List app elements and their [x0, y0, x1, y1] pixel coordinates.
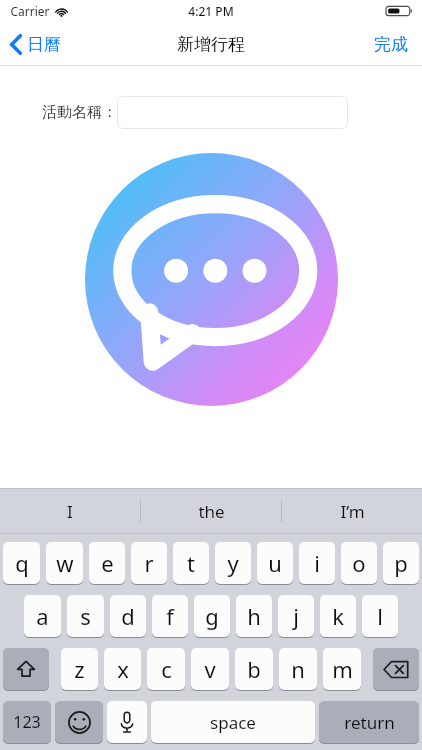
button[interactable]: the [141, 488, 281, 534]
button[interactable]: 123 [3, 701, 51, 743]
button[interactable]: i [299, 542, 335, 584]
button[interactable]: d [110, 595, 146, 637]
staticText: n [291, 654, 305, 684]
staticText: w [56, 548, 74, 578]
button[interactable]: j [278, 595, 314, 637]
button[interactable] [117, 96, 348, 129]
staticText: g [205, 601, 219, 631]
button[interactable]: w [46, 542, 83, 584]
button[interactable]: v [191, 648, 229, 690]
staticText: space [210, 711, 256, 734]
button[interactable]: t [173, 542, 209, 584]
button[interactable]: q [3, 542, 40, 584]
staticText: b [247, 654, 261, 684]
staticText: p [394, 548, 408, 578]
button[interactable]: z [61, 648, 98, 690]
button[interactable]: Shift [3, 648, 49, 690]
button[interactable]: p [383, 542, 419, 584]
button[interactable]: 完成 [360, 26, 422, 63]
staticText: I’m [340, 500, 365, 523]
button[interactable]: x [104, 648, 141, 690]
button[interactable]: r [131, 542, 167, 584]
button[interactable]: m [323, 648, 361, 690]
staticText: l [377, 601, 383, 631]
staticText: h [247, 601, 261, 631]
staticText: Carrier [10, 3, 50, 19]
button[interactable]: l [362, 595, 398, 637]
staticText: o [352, 548, 366, 578]
staticText: the [198, 500, 225, 523]
button[interactable]: I [0, 488, 140, 534]
staticText: c [161, 654, 172, 684]
staticText: m [332, 654, 353, 684]
button[interactable]: space [151, 701, 315, 743]
button[interactable]: g [194, 595, 230, 637]
staticText: t [187, 548, 195, 578]
button[interactable]: I’m [282, 488, 422, 534]
staticText: u [268, 548, 282, 578]
staticText: d [121, 601, 135, 631]
staticText: j [293, 601, 299, 631]
button[interactable]: f [152, 595, 188, 637]
staticText: f [166, 601, 174, 631]
button[interactable]: return [319, 701, 419, 743]
button[interactable]: h [236, 595, 272, 637]
button[interactable]: s [67, 595, 104, 637]
staticText: return [344, 711, 395, 734]
staticText: k [332, 601, 344, 631]
staticText: I [67, 500, 73, 523]
staticText: r [144, 548, 154, 578]
button[interactable]: k [320, 595, 356, 637]
button[interactable]: c [147, 648, 185, 690]
staticText: 123 [13, 711, 41, 733]
button[interactable]: o [341, 542, 377, 584]
staticText: 4:21 PM [188, 3, 234, 19]
button[interactable]: Backspace [373, 648, 419, 690]
button[interactable]: 日曆 [0, 28, 73, 61]
staticText: y [227, 548, 239, 578]
button[interactable]: n [279, 648, 317, 690]
staticText: q [15, 548, 29, 578]
button[interactable]: u [257, 542, 293, 584]
staticText: 日曆 [27, 34, 61, 55]
staticText: 活動名稱： [42, 103, 117, 122]
staticText: z [74, 654, 85, 684]
button[interactable]: Emoji [55, 701, 103, 743]
staticText: v [204, 654, 216, 684]
button[interactable]: b [235, 648, 273, 690]
staticText: x [117, 654, 129, 684]
staticText: s [80, 601, 91, 631]
staticText: i [314, 548, 320, 578]
button[interactable]: y [215, 542, 251, 584]
staticText: 新增行程 [177, 34, 245, 55]
staticText: a [36, 601, 49, 631]
staticText: e [101, 548, 114, 578]
button[interactable]: e [89, 542, 125, 584]
staticText: 完成 [374, 34, 408, 55]
button[interactable]: Dictation [107, 701, 147, 743]
button[interactable]: a [24, 595, 61, 637]
